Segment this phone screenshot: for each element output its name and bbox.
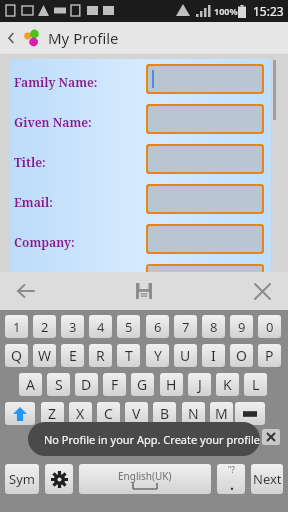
staticText: K [223, 375, 232, 394]
staticText: Sym [9, 470, 35, 488]
button[interactable]: V [125, 402, 148, 425]
button[interactable]: U [174, 344, 197, 367]
staticText: Y [154, 346, 162, 365]
button[interactable]: W [33, 344, 56, 367]
button[interactable]: 3 [61, 315, 84, 338]
button[interactable]: R [89, 344, 112, 367]
button[interactable]: Q [5, 344, 28, 367]
button[interactable]: C [97, 402, 120, 425]
button[interactable]: 4 [89, 315, 112, 338]
staticText: I [211, 346, 216, 365]
staticText: 3 [69, 318, 77, 336]
staticText: N [188, 404, 199, 423]
button[interactable]: 1 [5, 315, 28, 338]
button[interactable]: Key [45, 464, 73, 494]
staticText: 9 [238, 318, 246, 336]
button[interactable]: B [153, 402, 176, 425]
button[interactable]: P [258, 344, 281, 367]
button[interactable]: X [69, 402, 92, 425]
staticText: A [26, 375, 35, 394]
staticText: R [96, 346, 105, 365]
staticText: 7 [182, 318, 190, 336]
button[interactable]: Key [79, 464, 211, 494]
staticText: 6 [154, 318, 162, 336]
button[interactable]: O [230, 344, 253, 367]
staticText: 0 [266, 318, 274, 336]
button[interactable]: 8 [202, 315, 225, 338]
staticText: 100% [214, 5, 238, 17]
button[interactable]: 6 [146, 315, 169, 338]
staticText: E [69, 346, 77, 365]
staticText: V [132, 404, 141, 423]
staticText: Title: [14, 154, 46, 170]
staticText: Z [48, 404, 57, 423]
staticText: "? [228, 464, 235, 475]
staticText: Q [11, 346, 22, 365]
button[interactable]: 7 [174, 315, 197, 338]
button[interactable] [148, 106, 262, 132]
staticText: P [265, 346, 274, 365]
staticText: G [137, 375, 148, 394]
button[interactable]: 9 [230, 315, 253, 338]
button[interactable]: A [19, 373, 42, 396]
button[interactable]: K [216, 373, 239, 396]
staticText: L [252, 375, 260, 394]
button[interactable]: H [160, 373, 183, 396]
button[interactable]: F [103, 373, 126, 396]
button[interactable]: Key [5, 402, 35, 425]
button[interactable]: Back [8, 273, 44, 309]
staticText: 5 [125, 318, 133, 336]
staticText: Family Name: [14, 74, 98, 90]
button[interactable] [148, 146, 262, 172]
staticText: B [160, 404, 170, 423]
staticText: W [38, 346, 52, 365]
button[interactable]: N [182, 402, 205, 425]
button[interactable]: Save [126, 273, 162, 309]
button[interactable]: I [202, 344, 225, 367]
button[interactable]: D [75, 373, 98, 396]
button[interactable]: L [244, 373, 267, 396]
staticText: F [111, 375, 119, 394]
staticText: X [76, 404, 85, 423]
staticText: Given Name: [14, 114, 92, 130]
staticText: 4 [97, 318, 105, 336]
staticText: English(UK) [118, 469, 172, 483]
staticText: O [236, 346, 247, 365]
button[interactable]: Back [0, 22, 22, 54]
button[interactable]: Next [251, 464, 283, 494]
staticText: 2 [41, 318, 49, 336]
staticText: U [180, 346, 191, 365]
staticText: . [230, 475, 234, 494]
button[interactable]: No Profile in your App. Create your prof… [28, 422, 260, 456]
button[interactable]: M [210, 402, 233, 425]
staticText: No Profile in your App. Create your prof… [44, 432, 260, 447]
button[interactable]: J [188, 373, 211, 396]
button[interactable]: S [47, 373, 70, 396]
staticText: J [198, 375, 202, 394]
button[interactable] [148, 226, 262, 252]
button[interactable] [148, 186, 262, 212]
button[interactable]: Z [41, 402, 64, 425]
staticText: Email: [14, 194, 53, 210]
button[interactable]: E [61, 344, 84, 367]
staticText: T [125, 346, 133, 365]
staticText: H [166, 375, 177, 394]
button[interactable]: 5 [117, 315, 140, 338]
button[interactable]: G [131, 373, 154, 396]
staticText: C [104, 404, 113, 423]
button[interactable]: T [117, 344, 140, 367]
button[interactable]: 2 [33, 315, 56, 338]
button[interactable]: Key [235, 402, 265, 425]
staticText: 1 [13, 318, 21, 336]
button[interactable]: Y [146, 344, 169, 367]
button[interactable]: Close [244, 273, 280, 309]
staticText: 15:23 [253, 3, 284, 19]
button[interactable]: Dismiss [262, 429, 280, 445]
button[interactable]: Key [217, 464, 245, 494]
staticText: My Profile [48, 28, 119, 48]
staticText: S [55, 375, 63, 394]
button[interactable] [148, 66, 262, 92]
button[interactable]: 0 [258, 315, 281, 338]
staticText: 8 [210, 318, 218, 336]
button[interactable]: Sym [5, 464, 39, 494]
